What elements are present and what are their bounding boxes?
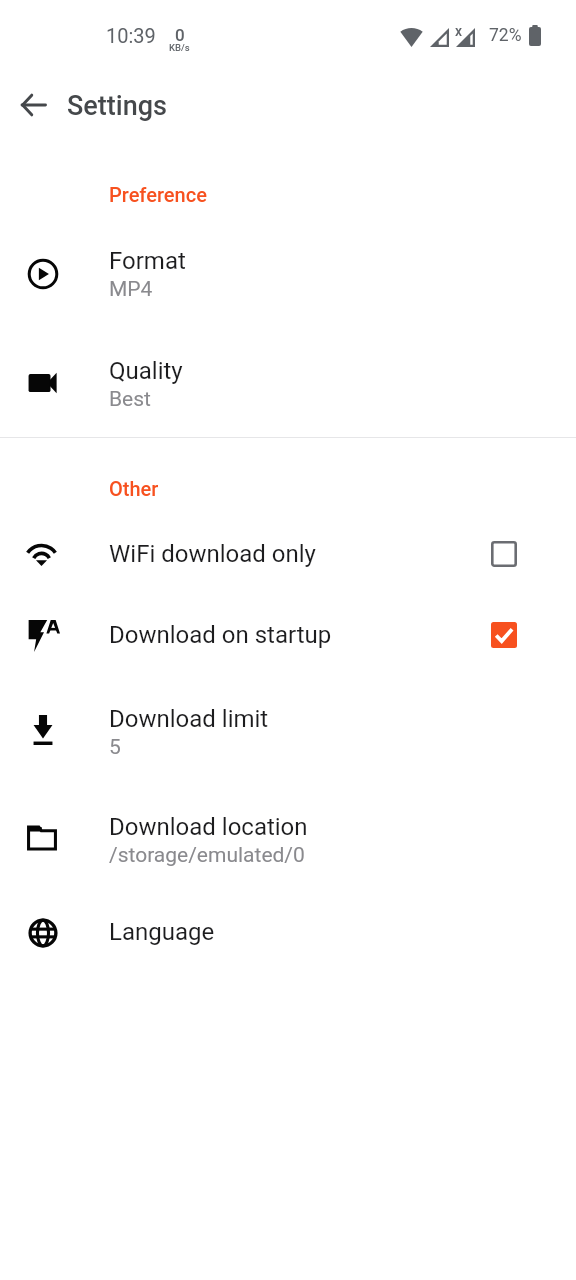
staticText: 5 [109, 735, 121, 760]
staticText: Format [109, 247, 186, 275]
staticText: KB/s [169, 42, 190, 53]
staticText: Download location [109, 813, 308, 841]
button[interactable]: WiFi download only [484, 534, 524, 574]
button[interactable]: Back [9, 81, 57, 129]
staticText: Download on startup [109, 621, 332, 649]
staticText: 10:39 [106, 24, 156, 47]
staticText: Other [109, 477, 159, 500]
staticText: Preference [109, 183, 207, 206]
button[interactable]: WiFi download only [0, 513, 576, 594]
staticText: 72% [489, 25, 522, 46]
staticText: Best [109, 387, 151, 412]
other: Battery 72 percent [529, 25, 541, 46]
button[interactable]: Quality [0, 335, 576, 443]
staticText: Settings [67, 90, 167, 122]
staticText: /storage/emulated/0 [109, 843, 305, 868]
staticText: WiFi download only [109, 540, 316, 568]
button[interactable]: Download location [0, 791, 576, 899]
staticText: Download limit [109, 705, 269, 733]
staticText: Language [109, 918, 215, 946]
staticText: x [455, 23, 463, 39]
button[interactable]: Language [0, 891, 576, 972]
staticText: 0 [175, 25, 185, 45]
button[interactable]: Download on startup [484, 615, 524, 655]
staticText: Quality [109, 357, 183, 385]
staticText: MP4 [109, 277, 153, 302]
other: Wi-Fi [401, 28, 422, 47]
button[interactable]: Download limit [0, 683, 576, 791]
button[interactable]: Format [0, 225, 576, 333]
button[interactable]: Download on startup [0, 594, 576, 675]
